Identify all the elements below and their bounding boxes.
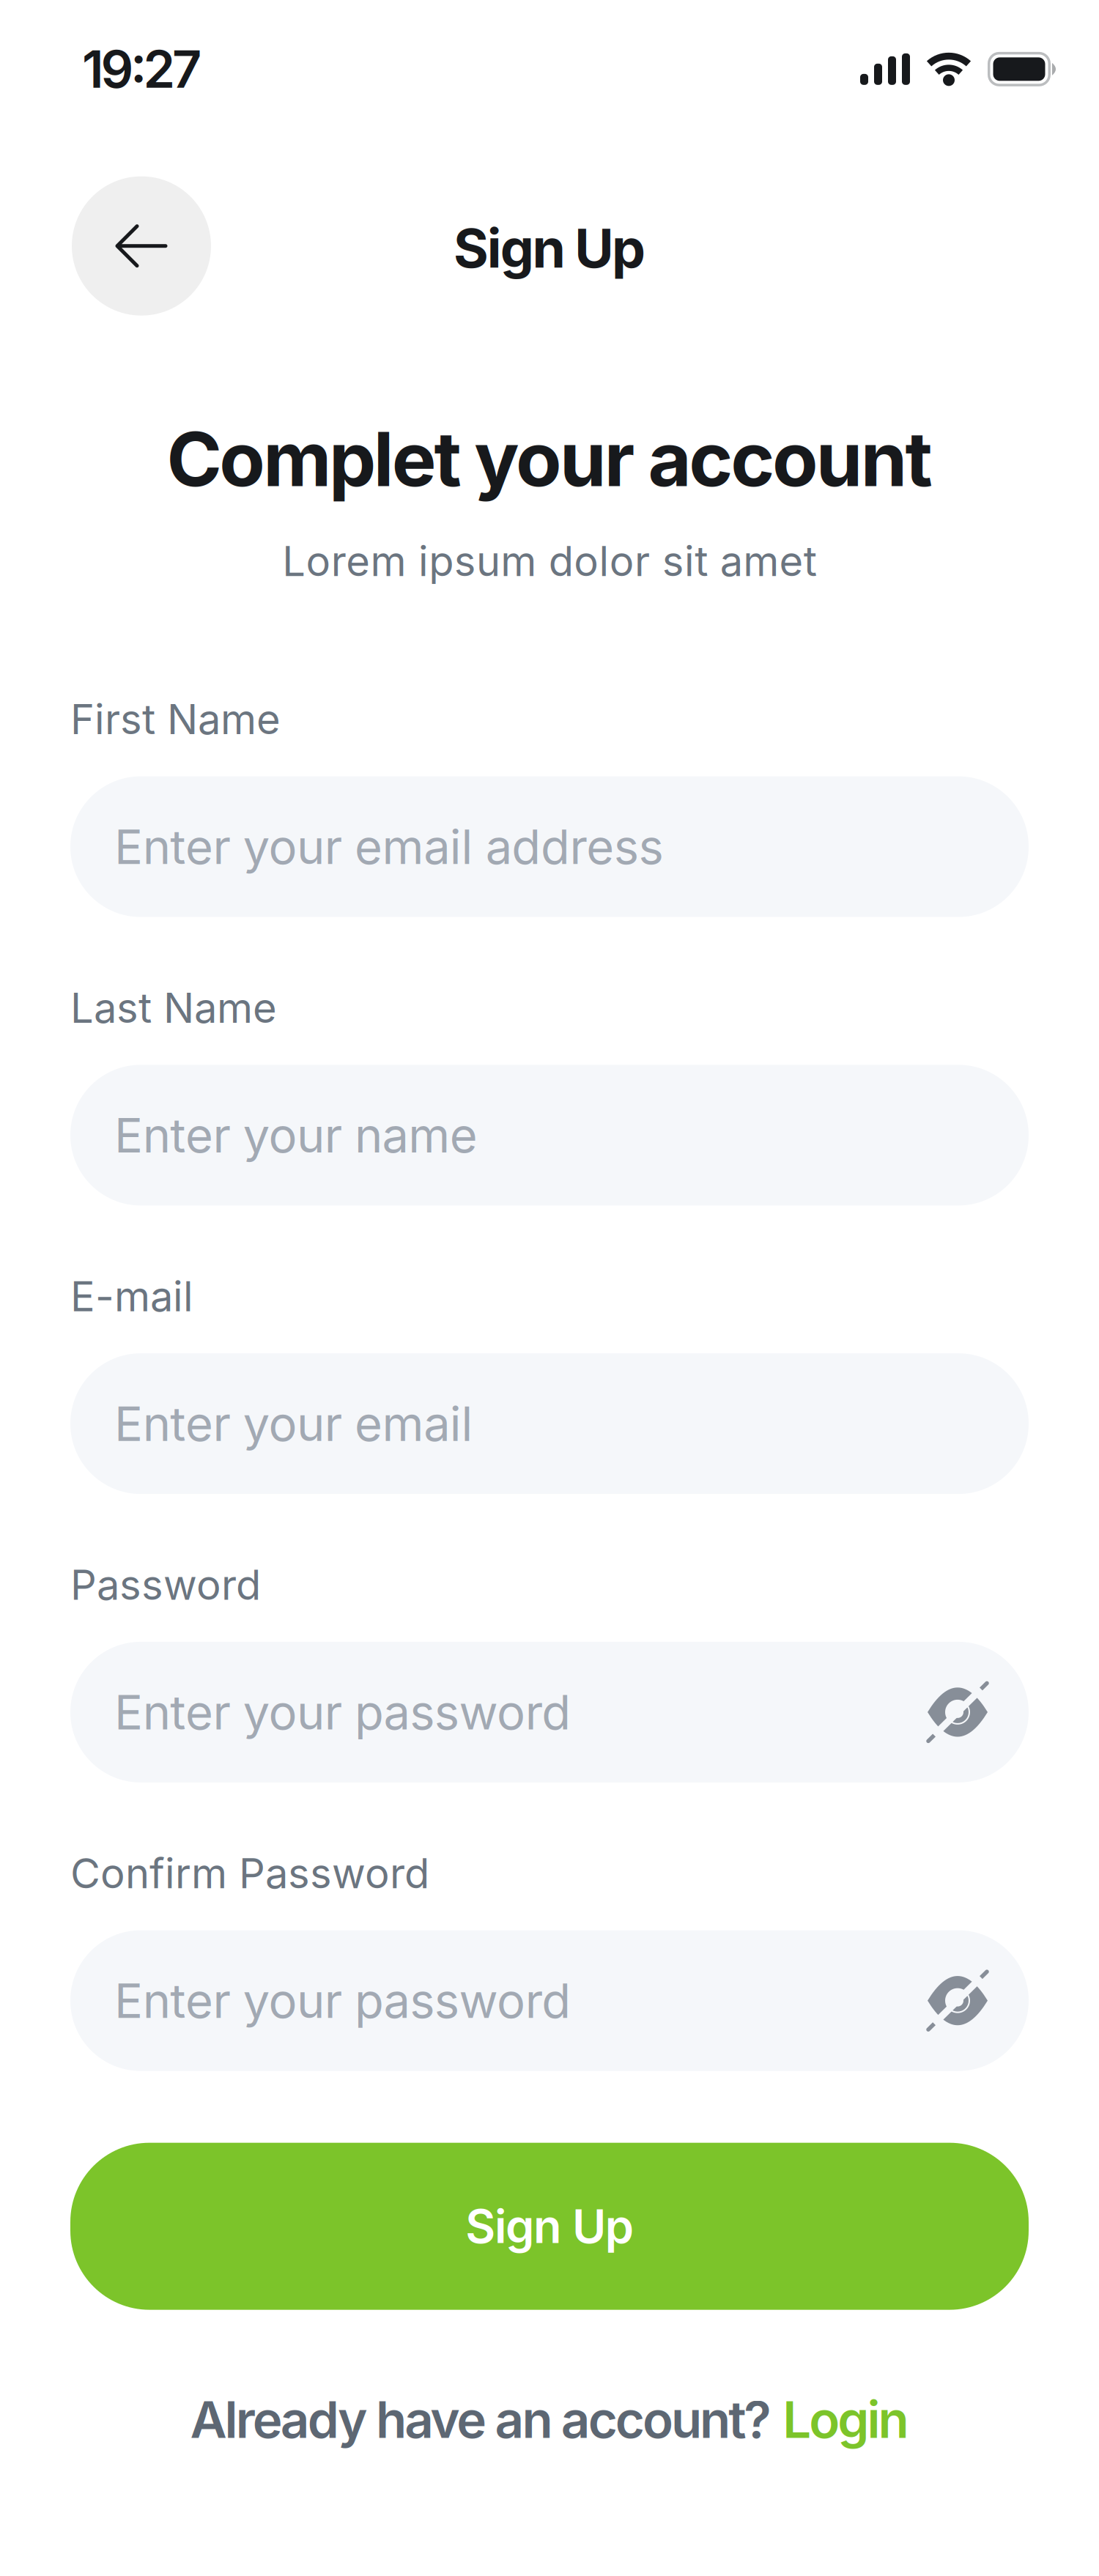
staticText: Enter your name bbox=[114, 1106, 478, 1164]
button[interactable]: Enter your password bbox=[70, 1930, 1029, 2071]
button[interactable]: Sign Up bbox=[70, 2143, 1029, 2310]
button[interactable]: Login bbox=[783, 2389, 909, 2450]
staticText: Enter your password bbox=[114, 1972, 571, 2029]
staticText: Enter your password bbox=[114, 1683, 571, 1741]
staticText: First Name bbox=[70, 694, 281, 744]
button[interactable] bbox=[72, 176, 211, 316]
button[interactable]: Enter your email address bbox=[70, 776, 1029, 917]
button[interactable]: Enter your email bbox=[70, 1353, 1029, 1494]
staticText: Last Name bbox=[70, 983, 277, 1033]
staticText: 19:27 bbox=[82, 38, 201, 100]
staticText: Password bbox=[70, 1560, 261, 1610]
staticText: Sign Up bbox=[465, 2198, 634, 2254]
button[interactable]: Enter your name bbox=[70, 1065, 1029, 1206]
button[interactable]: Enter your password bbox=[70, 1642, 1029, 1782]
staticText: Confirm Password bbox=[70, 1848, 429, 1898]
staticText: Lorem ipsum dolor sit amet bbox=[282, 536, 817, 586]
staticText: Enter your email address bbox=[114, 818, 663, 875]
staticText: Sign Up bbox=[454, 216, 645, 280]
staticText: Login bbox=[783, 2389, 909, 2450]
staticText: Complet your account bbox=[167, 414, 932, 504]
staticText: Enter your email bbox=[114, 1395, 473, 1452]
staticText: E-mail bbox=[70, 1271, 193, 1321]
staticText: Already have an account? bbox=[190, 2389, 771, 2450]
